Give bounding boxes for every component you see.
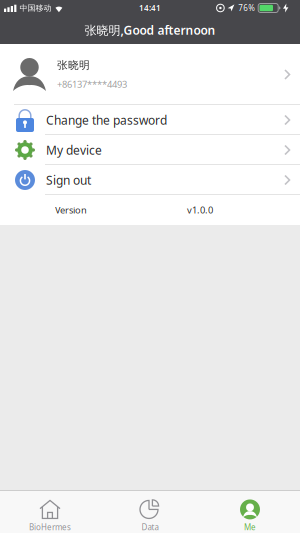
staticText: v1.0.0 — [187, 204, 213, 216]
staticText: Version — [55, 204, 87, 216]
button[interactable]: 张晓明 — [0, 44, 300, 105]
staticText: Me — [244, 522, 256, 532]
staticText: 14:41 — [139, 3, 161, 13]
staticText: BioHermes — [29, 522, 71, 532]
button[interactable]: Data — [100, 490, 200, 533]
staticText: 张晓明 — [57, 59, 90, 72]
button[interactable]: Sign out — [0, 165, 300, 195]
button[interactable]: Me — [200, 490, 300, 533]
button[interactable]: Change the password — [0, 105, 300, 135]
staticText: Change the password — [46, 112, 167, 128]
staticText: My device — [46, 142, 102, 158]
staticText: 76% — [238, 3, 255, 13]
button[interactable]: My device — [0, 135, 300, 165]
staticText: 中国移动 — [19, 3, 51, 13]
button[interactable]: BioHermes — [0, 490, 100, 533]
staticText: 张晓明,Good afternoon — [84, 22, 215, 38]
staticText: Sign out — [46, 172, 91, 188]
staticText: Data — [141, 522, 158, 532]
staticText: +86137****4493 — [57, 78, 127, 90]
